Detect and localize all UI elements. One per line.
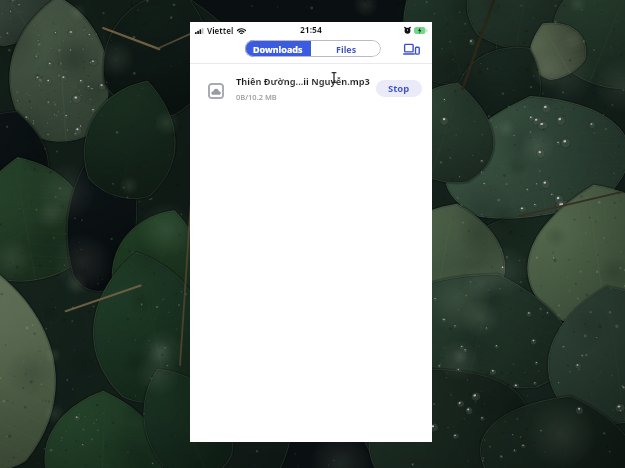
staticText: Thiên Đường...ii Nguyễn.mp3 bbox=[236, 75, 370, 88]
button[interactable]: Stop bbox=[376, 80, 422, 97]
staticText: 0B/10.2 MB bbox=[236, 92, 277, 102]
button[interactable]: Files bbox=[311, 40, 381, 57]
staticText: Files bbox=[336, 43, 357, 55]
button[interactable]: Devices bbox=[400, 38, 422, 60]
button[interactable] bbox=[190, 64, 432, 100]
button[interactable]: Downloads bbox=[245, 40, 311, 57]
staticText: Downloads bbox=[253, 43, 303, 55]
staticText: 21:54 bbox=[300, 24, 322, 36]
staticText: Stop bbox=[388, 82, 410, 95]
staticText: Viettel bbox=[207, 25, 234, 36]
